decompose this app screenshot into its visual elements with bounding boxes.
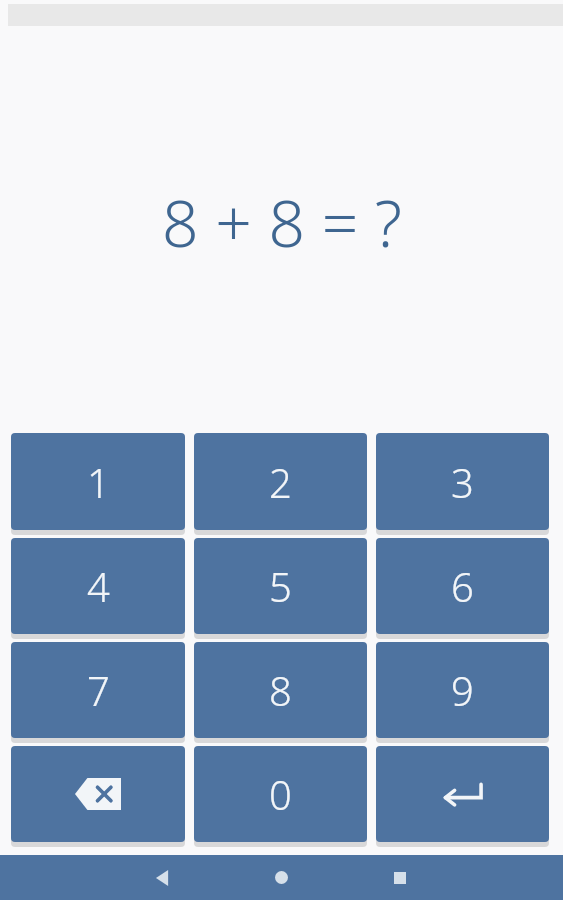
staticText: 2 [269, 455, 292, 509]
staticText: 7 [87, 663, 110, 717]
button[interactable]: Back [139, 855, 187, 900]
staticText: 8 + 8 = ? [162, 179, 402, 266]
button[interactable]: 2 [194, 433, 367, 530]
button[interactable]: 9 [376, 642, 549, 738]
staticText: 4 [87, 559, 110, 613]
button[interactable]: 7 [11, 642, 185, 738]
staticText: 8 [269, 663, 292, 717]
button[interactable]: 8 [194, 642, 367, 738]
button[interactable]: 5 [194, 538, 367, 634]
staticText: 1 [87, 455, 110, 509]
staticText: 0 [269, 767, 292, 821]
staticText: 5 [269, 559, 292, 613]
button[interactable]: 0 [194, 746, 367, 842]
staticText: 6 [451, 559, 474, 613]
button[interactable]: 3 [376, 433, 549, 530]
button[interactable]: 4 [11, 538, 185, 634]
staticText: 9 [451, 663, 474, 717]
button[interactable]: Backspace [11, 746, 185, 842]
button[interactable]: 6 [376, 538, 549, 634]
button[interactable]: Recent apps [376, 855, 424, 900]
button[interactable]: Home [257, 855, 305, 900]
staticText: 3 [451, 455, 474, 509]
button[interactable]: 1 [11, 433, 185, 530]
button[interactable]: Enter [376, 746, 549, 842]
